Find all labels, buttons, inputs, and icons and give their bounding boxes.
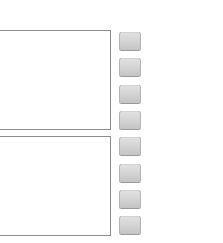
button[interactable]: Button 1 — [119, 32, 141, 51]
button[interactable]: Button 4 — [119, 111, 141, 130]
button[interactable]: Button 7 — [119, 190, 141, 209]
button[interactable]: Button 6 — [119, 164, 141, 183]
button[interactable]: Top panel — [0, 30, 111, 130]
button[interactable]: Button 3 — [119, 85, 141, 104]
button[interactable]: Button 5 — [119, 137, 141, 156]
button[interactable]: Button 2 — [119, 58, 141, 77]
button[interactable]: Button 8 — [119, 216, 141, 235]
button[interactable]: Bottom panel — [0, 136, 111, 236]
